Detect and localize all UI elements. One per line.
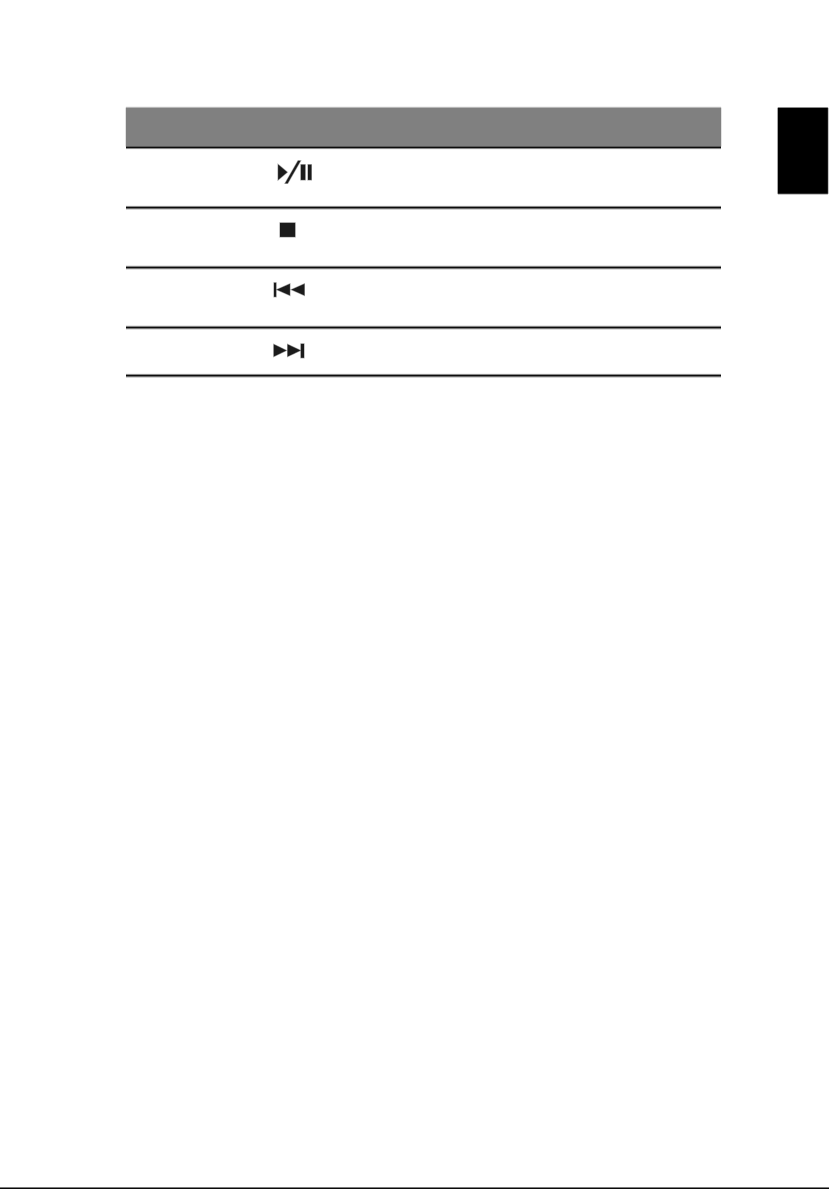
button[interactable]: Previous track: [126, 267, 721, 327]
button[interactable]: Play / Pause: [126, 146, 721, 207]
button[interactable]: Stop: [126, 207, 721, 267]
button[interactable]: Next track: [126, 327, 721, 375]
